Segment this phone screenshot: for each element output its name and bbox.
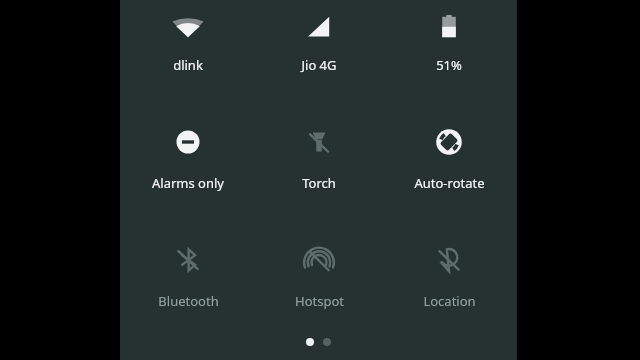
button[interactable]: Bluetooth	[125, 236, 251, 310]
staticText: Torch	[302, 174, 336, 192]
staticText: Bluetooth	[158, 292, 219, 310]
staticText: Jio 4G	[301, 56, 337, 74]
button[interactable]: dlink	[125, 0, 251, 74]
staticText: 51%	[436, 56, 462, 74]
button[interactable]: Auto-rotate	[386, 118, 512, 192]
button[interactable]: Location	[386, 236, 512, 310]
button[interactable]: Alarms only	[125, 118, 251, 192]
button[interactable]: 51%	[386, 0, 512, 74]
button[interactable]: Torch	[256, 118, 382, 192]
staticText: Auto-rotate	[414, 174, 485, 192]
staticText: Location	[423, 292, 476, 310]
staticText: Hotspot	[295, 292, 344, 310]
button[interactable]: Hotspot	[256, 236, 382, 310]
staticText: Alarms only	[152, 174, 224, 192]
button[interactable]: Jio 4G	[256, 0, 382, 74]
staticText: dlink	[173, 56, 203, 74]
